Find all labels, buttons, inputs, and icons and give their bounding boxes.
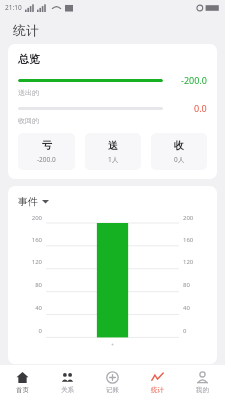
button[interactable]: 事件 xyxy=(16,194,51,209)
staticText: 21:10 xyxy=(5,3,22,12)
staticText: 0 xyxy=(183,327,209,335)
button[interactable]: 收 xyxy=(151,133,207,170)
staticText: 80 xyxy=(16,281,42,289)
staticText: 200 xyxy=(16,214,42,222)
staticText: 0.0 xyxy=(194,102,207,114)
staticText: -200.0 xyxy=(37,155,56,164)
staticText: 总览 xyxy=(18,52,40,66)
button[interactable]: 关系 xyxy=(45,365,90,400)
staticText: 送 xyxy=(108,139,118,152)
staticText: 40 xyxy=(183,304,209,312)
button[interactable]: 亏 xyxy=(18,133,75,170)
staticText: 160 xyxy=(16,236,42,244)
staticText: 80 xyxy=(183,281,209,289)
staticText: 120 xyxy=(16,258,42,266)
staticText: 0 xyxy=(16,327,42,335)
staticText: 160 xyxy=(183,236,209,244)
staticText: 首页 xyxy=(16,386,29,394)
staticText: 我的 xyxy=(196,386,209,394)
staticText: 统计 xyxy=(13,22,39,38)
button[interactable]: 我的 xyxy=(180,365,225,400)
staticText: 送出的 xyxy=(18,88,39,97)
staticText: 记账 xyxy=(106,386,119,394)
staticText: -200.0 xyxy=(181,74,207,86)
staticText: 关系 xyxy=(61,386,74,394)
button[interactable]: 记账 xyxy=(90,365,135,400)
staticText: 200 xyxy=(183,214,209,222)
staticText: 统计 xyxy=(151,386,164,394)
staticText: 120 xyxy=(183,258,209,266)
staticText: 收回的 xyxy=(18,116,39,125)
button[interactable]: 统计 xyxy=(135,365,180,400)
staticText: 0人 xyxy=(174,155,185,164)
staticText: 亏 xyxy=(42,139,52,152)
staticText: 事件 xyxy=(18,195,38,208)
staticText: 1人 xyxy=(108,155,119,164)
staticText: 收 xyxy=(174,139,184,152)
staticText: 40 xyxy=(16,304,42,312)
button[interactable]: 首页 xyxy=(0,365,45,400)
button[interactable]: 送 xyxy=(85,133,141,170)
